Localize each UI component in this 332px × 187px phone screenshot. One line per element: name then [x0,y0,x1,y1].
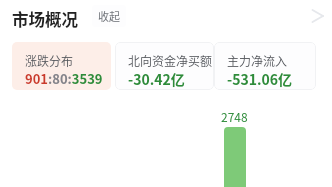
staticText: -531.06亿 [227,69,293,89]
button[interactable]: 收起 [92,5,126,27]
staticText: -30.42亿 [128,69,185,89]
staticText: 901:80:3539 [25,69,103,88]
staticText: 主力净流入 [227,52,288,69]
staticText: 2748 [221,108,248,125]
staticText: 市场概况 [12,7,78,31]
staticText: 涨跌分布 [25,52,74,69]
button[interactable]: More market details [306,4,330,28]
button[interactable]: 北向资金净买额 [115,42,214,90]
button[interactable]: 涨跌分布 [12,42,111,90]
button[interactable]: 市场概况 [12,7,78,31]
staticText: 北向资金净买额 [128,52,213,69]
button[interactable]: 主力净流入 [214,42,316,90]
staticText: 收起 [98,8,120,24]
